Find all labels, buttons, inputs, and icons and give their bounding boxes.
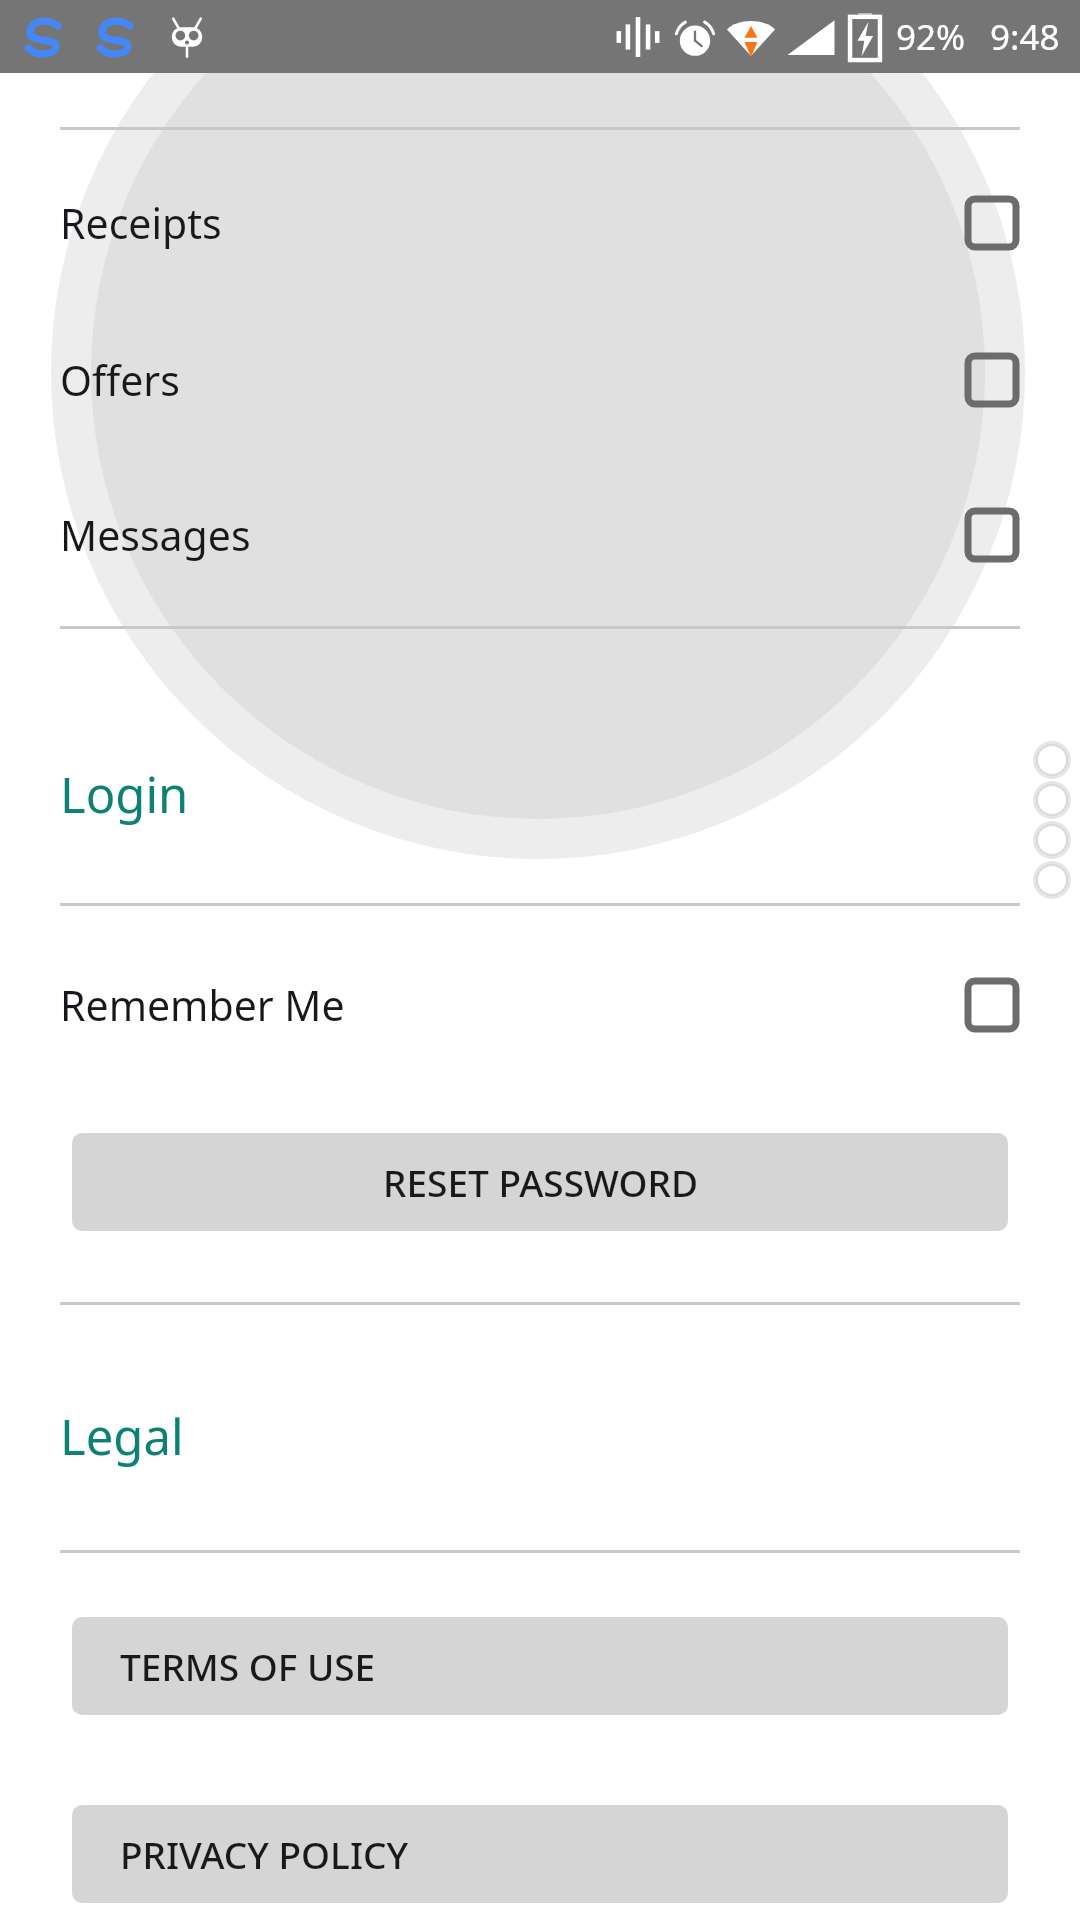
button[interactable]: Checkbox bbox=[964, 352, 1020, 408]
button[interactable]: Checkbox bbox=[964, 507, 1020, 563]
button[interactable]: Messages bbox=[0, 496, 1080, 574]
button[interactable]: TERMS OF USE bbox=[72, 1617, 1008, 1715]
staticText: TERMS OF USE bbox=[120, 1641, 376, 1691]
staticText: Messages bbox=[60, 507, 251, 563]
button[interactable]: Receipts bbox=[0, 184, 1080, 262]
staticText: 9:48 bbox=[990, 13, 1060, 61]
button[interactable]: RESET PASSWORD bbox=[72, 1133, 1008, 1231]
staticText: RESET PASSWORD bbox=[383, 1157, 698, 1207]
button[interactable]: Checkbox bbox=[964, 195, 1020, 251]
staticText: 92% bbox=[896, 13, 966, 61]
staticText: Receipts bbox=[60, 195, 222, 251]
staticText: Offers bbox=[60, 352, 180, 408]
button[interactable]: PRIVACY POLICY bbox=[72, 1805, 1008, 1903]
staticText: Login bbox=[60, 761, 189, 828]
button[interactable]: Offers bbox=[0, 341, 1080, 419]
staticText: Remember Me bbox=[60, 977, 345, 1033]
button[interactable]: Remember Me bbox=[0, 966, 1080, 1044]
staticText: PRIVACY POLICY bbox=[120, 1829, 409, 1879]
staticText: Legal bbox=[60, 1403, 184, 1470]
button[interactable]: Checkbox bbox=[964, 977, 1020, 1033]
